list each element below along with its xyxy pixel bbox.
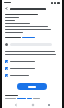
button[interactable] [17,83,47,90]
button[interactable] [5,73,59,78]
button[interactable]: Recents [46,102,51,107]
button[interactable]: Back [4,6,9,11]
button[interactable] [5,42,59,47]
button[interactable]: Home [30,102,35,107]
button[interactable] [5,66,59,71]
button[interactable]: Back [13,102,18,107]
button[interactable] [5,59,59,64]
